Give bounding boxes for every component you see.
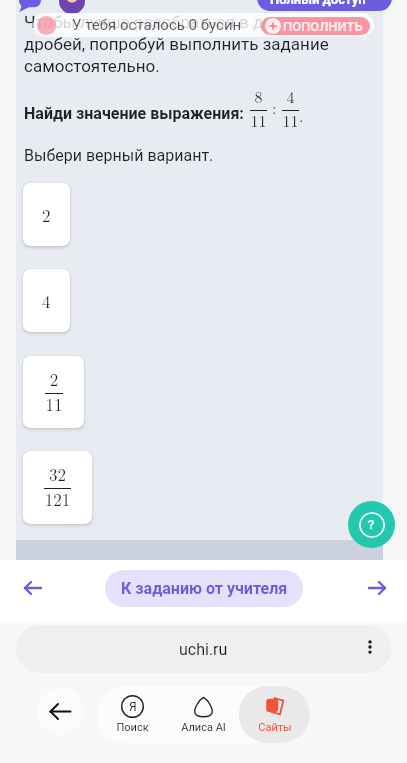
staticText: Выбери верный вариант.	[24, 146, 214, 165]
staticText: :	[272, 96, 277, 119]
staticText: 11	[250, 109, 267, 132]
button[interactable]: 2	[23, 183, 70, 246]
staticText: У тебя осталось 0 бусин	[72, 16, 242, 34]
staticText: 4	[42, 289, 51, 313]
button[interactable]: ПОПОЛНИТЬ	[261, 17, 370, 35]
staticText: uchi.ru	[179, 640, 228, 659]
staticText: Я	[129, 700, 137, 714]
staticText: Полный доступ	[270, 0, 366, 7]
button[interactable]: More options	[362, 639, 378, 655]
staticText: Чтобы лучше разобраться в делении	[24, 12, 321, 32]
staticText: Поиск	[116, 721, 149, 734]
staticText: самостоятельно.	[24, 56, 160, 76]
staticText: .	[299, 104, 304, 127]
button[interactable]	[33, 13, 374, 37]
staticText: 121	[44, 487, 71, 511]
button[interactable]: Help	[348, 501, 395, 548]
button[interactable]: 2	[23, 356, 84, 428]
button[interactable]: 4	[23, 269, 70, 332]
button[interactable]: 32	[23, 451, 92, 524]
button[interactable]: Back	[37, 688, 84, 735]
staticText: Алиса AI	[181, 721, 226, 734]
staticText: К заданию от учителя	[121, 579, 288, 598]
button[interactable]: uchi.ru	[16, 625, 391, 673]
staticText: 2	[42, 203, 51, 227]
staticText: дробей, попробуй выполнить задание	[24, 34, 329, 54]
staticText: 11	[282, 109, 299, 132]
staticText: 4	[282, 85, 299, 108]
staticText: 32	[44, 462, 71, 486]
staticText: Найди значение выражения:	[24, 104, 244, 123]
staticText: 11	[45, 392, 63, 416]
staticText: 8	[250, 85, 267, 108]
button[interactable]: К заданию от учителя	[105, 570, 303, 607]
staticText: ?	[368, 517, 375, 532]
staticText: Сайты	[258, 721, 292, 734]
staticText: ПОПОЛНИТЬ	[283, 19, 363, 34]
button[interactable]: Сайты	[239, 686, 310, 743]
staticText: 2	[45, 367, 63, 391]
button[interactable]: Я	[97, 686, 168, 743]
button[interactable]: Previous	[19, 574, 47, 602]
button[interactable]: Полный доступ	[257, 0, 392, 11]
button[interactable]: Алиса AI	[168, 686, 239, 743]
button[interactable]: Next	[363, 574, 391, 602]
